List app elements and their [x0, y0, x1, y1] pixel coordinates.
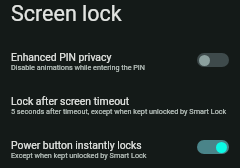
staticText: Power button instantly locks	[11, 139, 142, 151]
staticText: Enhanced PIN privacy	[11, 51, 112, 63]
staticText: Screen lock	[11, 1, 122, 26]
staticText: Disable animations while entering the PI…	[11, 63, 146, 71]
staticText: 5 seconds after timeout, except when kep…	[11, 107, 227, 115]
staticText: Except when kept unlocked by Smart Lock	[11, 151, 147, 159]
button[interactable]: Power button instantly locks	[0, 127, 240, 168]
button[interactable]: Lock after screen timeout	[0, 83, 240, 127]
button[interactable]: Power button instantly locks	[197, 140, 229, 154]
button[interactable]: Enhanced PIN privacy	[197, 53, 229, 67]
button[interactable]: Enhanced PIN privacy	[0, 39, 240, 83]
staticText: Lock after screen timeout	[11, 95, 130, 107]
